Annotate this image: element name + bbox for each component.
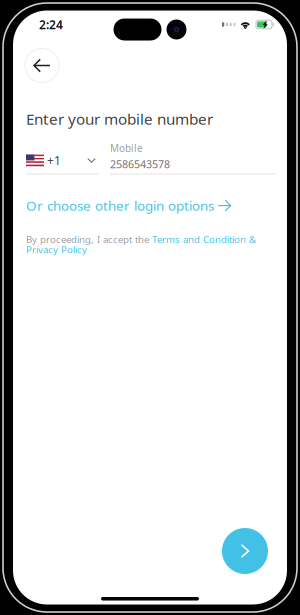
button[interactable]: Back [25,48,59,82]
staticText: 2586543578 [110,157,170,171]
staticText: Privacy Policy [26,243,87,256]
staticText: Or choose other login options [26,196,214,215]
staticText: Mobile [110,141,143,155]
staticText: +1 [47,152,61,168]
button[interactable]: Privacy Policy [26,243,274,256]
staticText: By proceeding, I accept the [26,233,152,246]
button[interactable]: Continue [222,528,268,574]
staticText: Enter your mobile number [26,108,213,129]
button[interactable]: Country code [26,152,99,174]
staticText: Terms and Condition & [152,233,256,246]
button[interactable]: Or choose other login options [13,174,287,215]
staticText: 2:24 [39,16,63,32]
